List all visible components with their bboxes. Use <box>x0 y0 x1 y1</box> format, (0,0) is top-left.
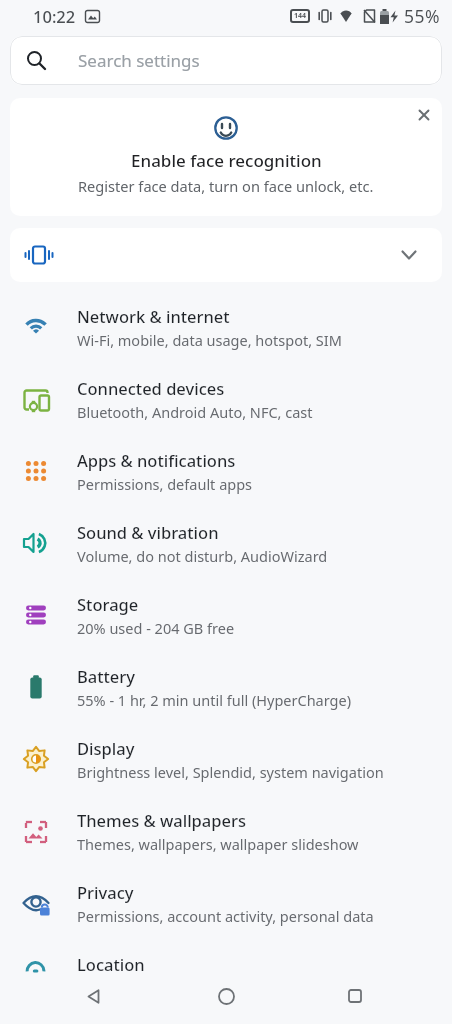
button[interactable] <box>339 980 371 1012</box>
button[interactable]: Search settings <box>10 36 442 85</box>
button[interactable] <box>10 228 442 282</box>
button[interactable]: Sound & vibration <box>0 507 452 579</box>
button[interactable]: Apps & notifications <box>0 435 452 507</box>
staticText: 10:22 <box>33 5 76 27</box>
staticText: Location <box>77 953 145 975</box>
staticText: Sound & vibration <box>77 521 219 543</box>
staticText: 20% used - 204 GB free <box>77 618 235 638</box>
staticText: Themes & wallpapers <box>77 809 246 831</box>
staticText: Permissions, account activity, personal … <box>77 906 374 926</box>
button[interactable]: Location <box>0 939 452 1011</box>
staticText: Network & internet <box>77 305 230 327</box>
button[interactable]: Enable face recognition <box>10 98 442 216</box>
staticText: 55% - 1 hr, 2 min until full (HyperCharg… <box>77 690 352 710</box>
staticText: Bluetooth, Android Auto, NFC, cast <box>77 402 313 422</box>
staticText: Search settings <box>78 49 200 72</box>
button[interactable] <box>412 103 436 127</box>
staticText: Brightness level, Splendid, system navig… <box>77 762 384 782</box>
staticText: Privacy <box>77 881 134 903</box>
staticText: Wi-Fi, mobile, data usage, hotspot, SIM <box>77 330 342 350</box>
staticText: Battery <box>77 665 136 687</box>
staticText: Enable face recognition <box>131 149 322 172</box>
staticText: Themes, wallpapers, wallpaper slideshow <box>77 834 359 854</box>
button[interactable] <box>210 980 242 1012</box>
staticText: Volume, do not disturb, AudioWizard <box>77 546 328 566</box>
staticText: Register face data, turn on face unlock,… <box>78 176 374 196</box>
button[interactable] <box>77 980 109 1012</box>
staticText: Storage <box>77 593 139 615</box>
staticText: 144 <box>294 11 307 21</box>
button[interactable]: Network & internet <box>0 291 452 363</box>
staticText: Connected devices <box>77 377 225 399</box>
button[interactable]: Themes & wallpapers <box>0 795 452 867</box>
staticText: Permissions, default apps <box>77 474 253 494</box>
button[interactable]: Privacy <box>0 867 452 939</box>
staticText: Apps & notifications <box>77 449 236 471</box>
button[interactable]: Display <box>0 723 452 795</box>
staticText: Display <box>77 737 135 759</box>
staticText: 55% <box>404 4 441 28</box>
staticText: On - 4 apps have access to location <box>77 978 315 998</box>
button[interactable]: Storage <box>0 579 452 651</box>
button[interactable]: Battery <box>0 651 452 723</box>
button[interactable]: Connected devices <box>0 363 452 435</box>
